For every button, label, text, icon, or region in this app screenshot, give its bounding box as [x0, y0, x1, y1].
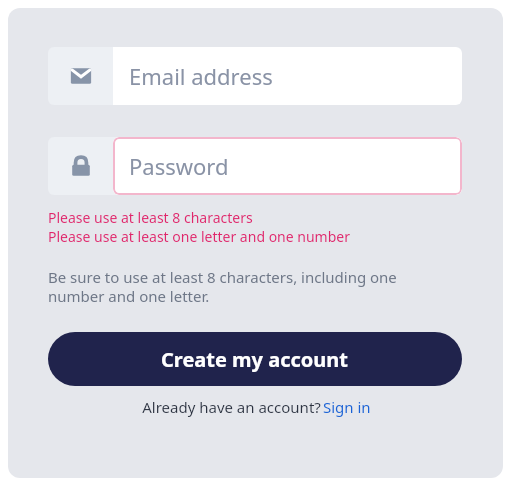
button[interactable]: Password [48, 137, 462, 195]
staticText: Please use at least 8 characters [48, 208, 253, 227]
button[interactable]: Email [48, 47, 462, 105]
staticText: Sign in [323, 397, 371, 417]
staticText: Be sure to use at least 8 characters, in… [48, 267, 455, 306]
staticText: Email address [129, 61, 273, 91]
staticText: Create my account [161, 346, 349, 373]
other: Password [48, 137, 113, 195]
staticText: Already have an account? [140, 397, 323, 417]
other: Email [48, 47, 113, 105]
staticText: Please use at least one letter and one n… [48, 227, 350, 246]
button[interactable]: Create my account [48, 332, 462, 386]
staticText: Password [129, 151, 229, 181]
button[interactable]: Sign in [323, 397, 371, 417]
